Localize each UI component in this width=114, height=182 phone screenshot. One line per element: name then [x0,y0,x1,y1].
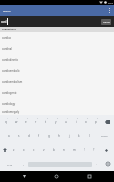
staticText: . [96,162,97,166]
button[interactable]: cardiomegaly [0,109,114,115]
staticText: f [38,134,40,138]
staticText: c [33,148,35,152]
staticText: b [53,148,55,152]
staticText: cardiogenic [2,91,17,95]
button[interactable]: c [29,143,39,157]
button[interactable]: Emoji [101,157,114,171]
staticText: i [76,120,77,124]
button[interactable]: h [54,129,64,143]
staticText: d [28,134,30,138]
staticText: 6 [57,117,59,119]
button[interactable]: k [74,129,84,143]
button[interactable]: cardinal [0,43,114,54]
staticText: n [63,148,65,152]
staticText: Cancel [103,21,110,24]
staticText: 7 [67,117,69,119]
staticText: g [48,134,50,138]
button[interactable]: z [9,143,19,157]
staticText: k [78,134,80,138]
staticText: Suggestions [2,28,16,31]
button[interactable]: Search [94,129,114,143]
button[interactable]: 5 [41,115,51,129]
button[interactable]: cardiac [0,32,114,43]
staticText: h [58,134,60,138]
button[interactable]: Emoji keyboard [99,143,114,157]
button[interactable]: 4 [31,115,41,129]
staticText: 0 [97,117,99,119]
staticText: v [43,148,45,152]
button[interactable]: Recents [81,171,97,182]
staticText: 9 [87,117,89,119]
button[interactable]: n [59,143,69,157]
button[interactable]: v [39,143,49,157]
button[interactable]: 8 [71,115,81,129]
staticText: e [25,120,27,124]
staticText: 5 [47,117,49,119]
staticText: w [15,120,18,124]
staticText: cardinal [2,47,13,51]
button[interactable]: Cancel [101,19,111,25]
button[interactable]: cardioembolism [0,76,114,87]
button[interactable]: 6 [51,115,61,129]
button[interactable]: 0 [91,115,101,129]
staticText: r [35,120,37,124]
staticText: card [1,20,7,24]
staticText: j [69,134,70,138]
button[interactable]: s [14,129,24,143]
staticText: cardioembolic [2,69,20,73]
staticText: Search [101,135,108,138]
button[interactable]: Space [28,157,92,171]
staticText: cardiomegaly [2,110,20,114]
staticText: ? [93,148,95,152]
staticText: 8 [77,117,79,119]
button[interactable]: g [44,129,54,143]
button[interactable]: ? [89,143,99,157]
button[interactable]: cardiology [0,98,114,109]
button[interactable]: ?123 [0,157,19,171]
button[interactable]: Home [48,171,64,182]
staticText: 4 [37,117,39,119]
staticText: t [45,120,47,124]
staticText: m [73,148,76,152]
button[interactable]: l [84,129,94,143]
button[interactable]: 7 [61,115,71,129]
staticText: cardiokinetic [2,58,19,62]
staticText: ! [84,148,85,152]
staticText: 1 [7,117,9,119]
button[interactable]: Backspace [101,115,114,129]
button[interactable]: cardiokinetic [0,54,114,65]
button[interactable]: b [49,143,59,157]
button[interactable]: 1 [0,115,11,129]
button[interactable]: Back [16,171,32,182]
staticText: , [23,162,24,166]
staticText: q [5,120,7,124]
button[interactable]: m [69,143,79,157]
button[interactable]: 3 [21,115,31,129]
staticText: p [95,120,97,124]
button[interactable]: a [4,129,14,143]
staticText: cardiology [2,102,16,106]
button[interactable]: More options [104,5,114,16]
staticText: 2 [17,117,19,119]
button[interactable]: ! [79,143,89,157]
button[interactable]: 9 [81,115,91,129]
button[interactable]: 2 [11,115,21,129]
staticText: u [65,120,67,124]
button[interactable]: x [19,143,29,157]
button[interactable]: Shift [0,143,9,157]
staticText: Search [3,9,11,12]
staticText: 4:15 [108,1,113,4]
staticText: 3 [27,117,29,119]
button[interactable]: d [24,129,34,143]
staticText: cardiac [2,36,11,40]
button[interactable]: j [64,129,74,143]
staticText: a [8,134,10,138]
staticText: y [55,120,57,124]
button[interactable]: f [34,129,44,143]
staticText: o [85,120,87,124]
staticText: x [23,148,25,152]
button[interactable]: cardioembolic [0,65,114,76]
button[interactable]: cardiogenic [0,87,114,98]
